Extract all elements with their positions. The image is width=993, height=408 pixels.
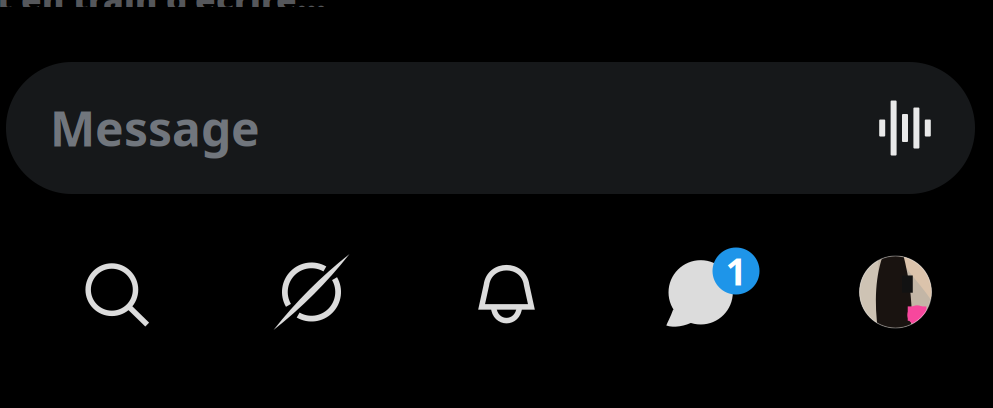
- button[interactable]: Record voice message: [878, 62, 975, 194]
- button[interactable]: Profile: [790, 212, 985, 372]
- button[interactable]: Search: [8, 212, 203, 372]
- staticText: 1: [725, 246, 746, 296]
- button[interactable]: Messages, 1 unread: [594, 212, 790, 372]
- button[interactable]: Activity: [399, 212, 594, 372]
- button[interactable]: Create: [203, 212, 399, 372]
- button[interactable]: Message: [6, 62, 878, 194]
- staticText: Message: [50, 96, 260, 160]
- staticText: t en train d'écrire…: [0, 0, 326, 21]
